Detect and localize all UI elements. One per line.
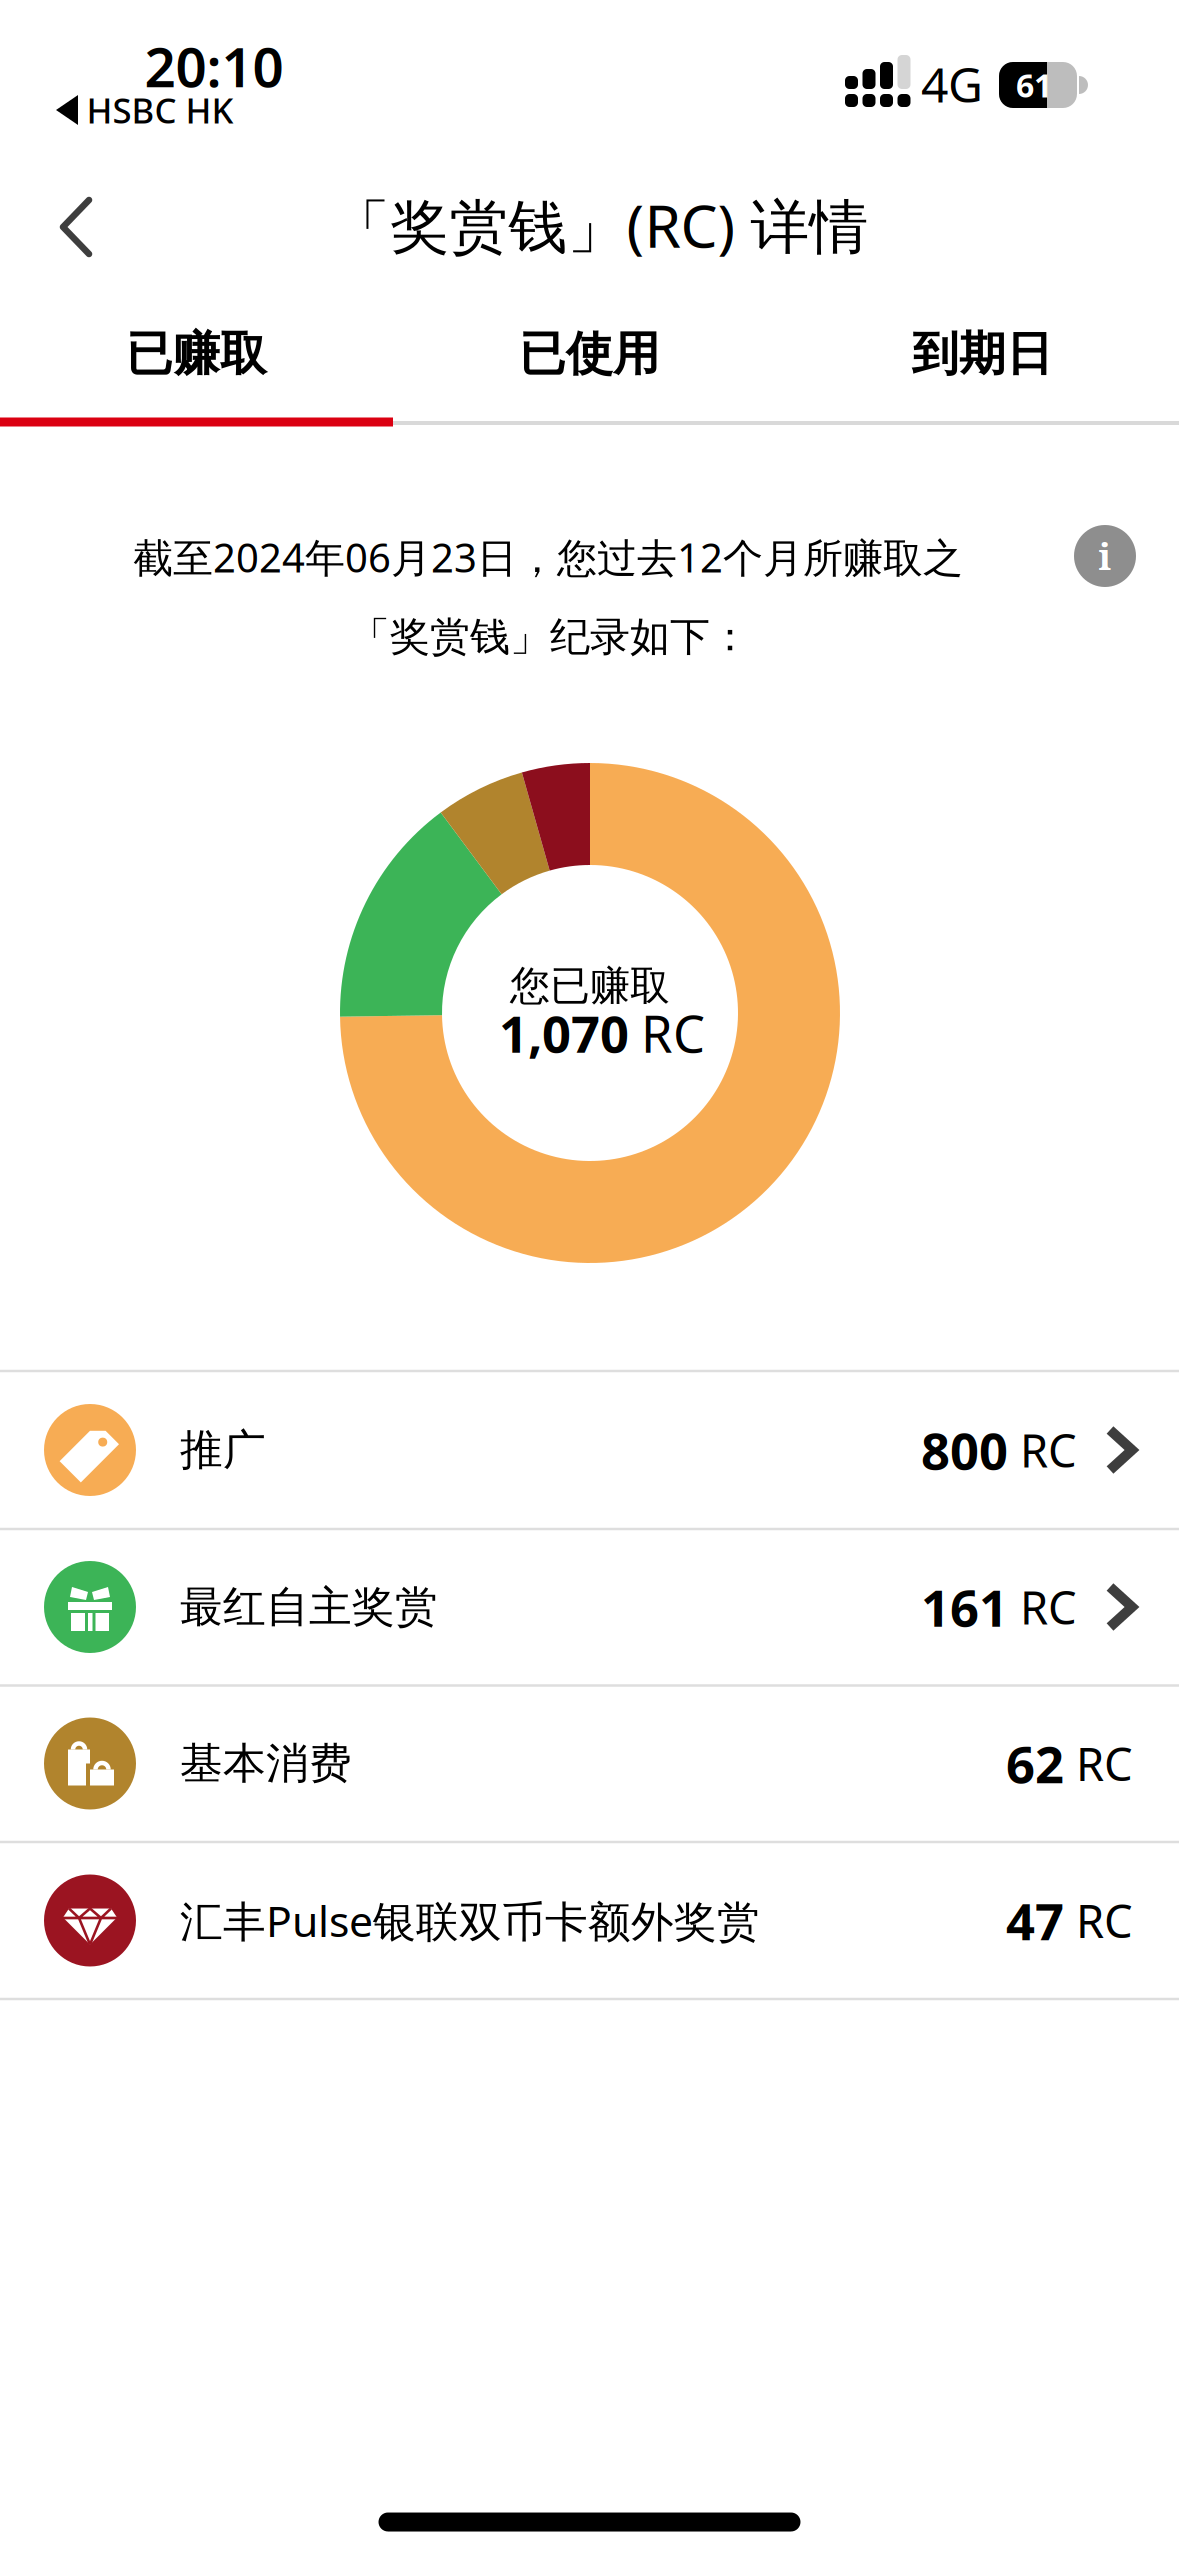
staticText: 800 xyxy=(921,1416,1008,1484)
staticText: 61 xyxy=(1016,64,1052,106)
staticText: RC xyxy=(641,999,705,1067)
staticText: RC xyxy=(1020,1577,1077,1637)
staticText: 到期日 xyxy=(912,325,1053,383)
button[interactable]: 已赚取 xyxy=(0,295,393,413)
button[interactable]: 到期日 xyxy=(786,295,1179,413)
staticText: i xyxy=(1098,531,1111,580)
button[interactable]: 基本消费 xyxy=(0,1685,1179,1841)
staticText: 您已赚取 xyxy=(510,961,670,1010)
button[interactable]: 推广 xyxy=(0,1372,1179,1528)
staticText: 「奖赏钱」纪录如下： xyxy=(350,612,750,661)
button[interactable]: 最红自主奖赏 xyxy=(0,1529,1179,1685)
staticText: 最红自主奖赏 xyxy=(180,1581,438,1633)
staticText: 已赚取 xyxy=(126,325,267,383)
staticText: HSBC HK xyxy=(86,87,233,133)
button[interactable]: 汇丰Pulse银联双币卡额外奖赏 xyxy=(0,1842,1179,1998)
staticText: 47 xyxy=(1006,1887,1064,1954)
staticText: 62 xyxy=(1006,1730,1064,1797)
staticText: RC xyxy=(1076,1733,1133,1794)
button[interactable]: 已使用 xyxy=(393,295,786,413)
staticText: 推广 xyxy=(180,1424,266,1476)
staticText: 汇丰Pulse银联双币卡额外奖赏 xyxy=(180,1892,760,1949)
staticText: 「奖赏钱」(RC) 详情 xyxy=(331,186,868,264)
staticText: 1,070 xyxy=(499,999,629,1067)
staticText: 已使用 xyxy=(519,325,660,383)
staticText: RC xyxy=(1076,1890,1133,1951)
staticText: 161 xyxy=(921,1573,1008,1641)
staticText: 4G xyxy=(921,52,983,116)
button[interactable]: i xyxy=(1074,525,1136,587)
staticText: RC xyxy=(1020,1420,1077,1480)
button[interactable] xyxy=(43,194,109,260)
staticText: 截至2024年06月23日，您过去12个月所赚取之 xyxy=(133,530,963,583)
staticText: 基本消费 xyxy=(180,1737,352,1790)
staticText: 20:10 xyxy=(144,30,283,102)
